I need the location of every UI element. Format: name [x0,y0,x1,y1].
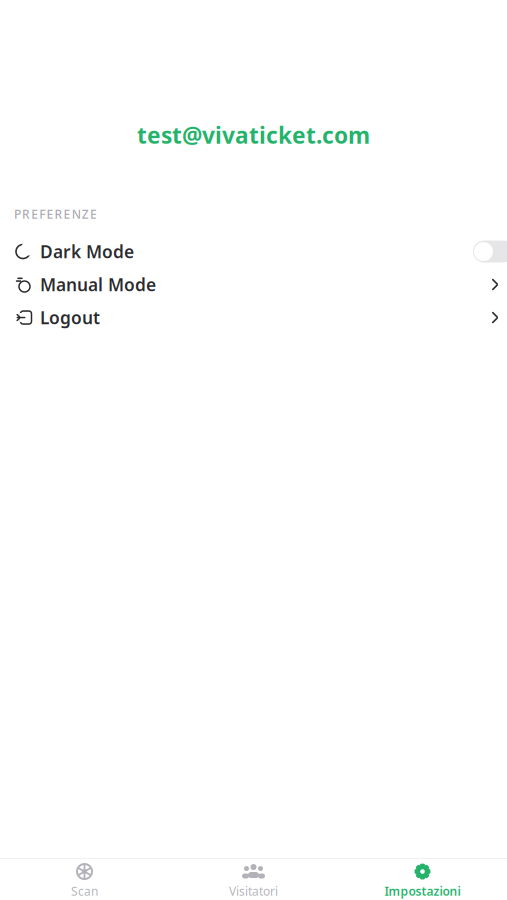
button[interactable]: Scan [0,854,169,900]
staticText: test@vivaticket.com [137,120,370,150]
staticText: Logout [40,306,100,329]
button[interactable]: Dark Mode [0,235,507,268]
button[interactable]: Impostazioni [338,854,507,900]
staticText: Scan [71,883,98,899]
button[interactable]: Logout [0,301,507,334]
staticText: Dark Mode [40,240,134,263]
staticText: PREFERENZE [14,206,97,222]
staticText: Manual Mode [40,273,156,296]
staticText: Impostazioni [384,883,460,899]
button[interactable]: Manual Mode [0,268,507,301]
button[interactable]: Visitatori [169,854,338,900]
button[interactable]: Dark Mode [473,240,507,262]
staticText: Visitatori [229,883,278,899]
